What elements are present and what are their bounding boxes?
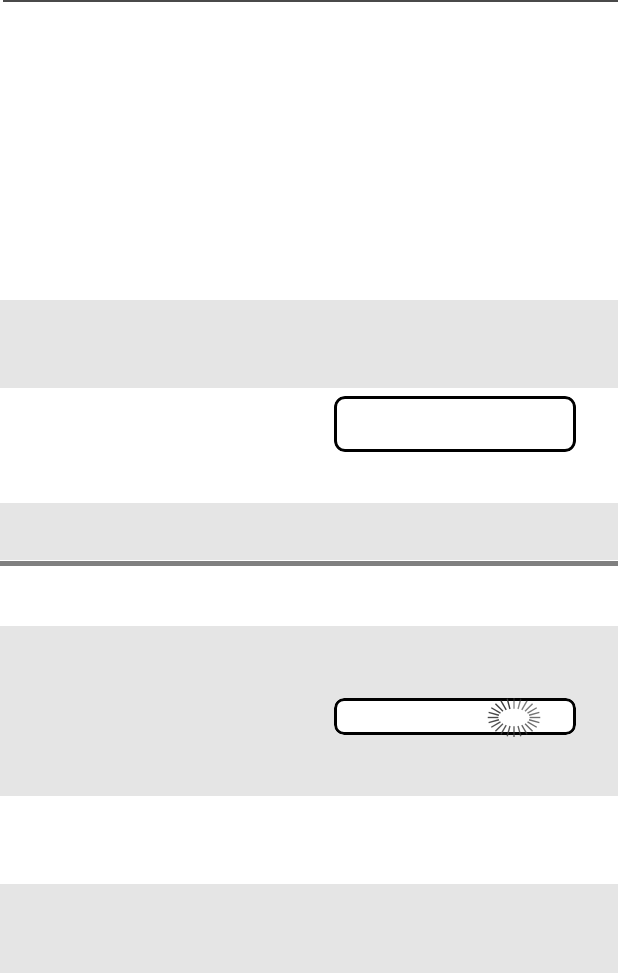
button[interactable]: Text field — [334, 396, 576, 452]
button[interactable]: Loading field — [334, 698, 576, 735]
other: Loading — [488, 698, 540, 737]
